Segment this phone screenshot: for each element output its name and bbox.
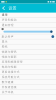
button[interactable]: Back	[2, 5, 6, 11]
button[interactable]: 开发者选项	[0, 85, 56, 90]
staticText: 显示	[2, 40, 8, 43]
button[interactable]: 声音和振动	[0, 18, 56, 23]
button[interactable]: 锁屏与密码	[0, 49, 56, 54]
staticText: 指纹与面部	[2, 55, 17, 58]
staticText: 应用和权限管理	[2, 60, 23, 63]
staticText: 设置	[8, 6, 16, 10]
button[interactable]: 指纹与面部	[0, 54, 56, 59]
button[interactable]: 应用和权限管理	[0, 59, 56, 64]
button[interactable]: 通用	[0, 13, 56, 18]
staticText: 锁屏与密码	[2, 50, 17, 53]
button[interactable]: 显示	[0, 39, 56, 44]
staticText: 开发者选项	[2, 85, 17, 89]
button[interactable]: 关于本机	[0, 90, 56, 95]
staticText: 电池与性能	[2, 65, 17, 69]
staticText: 关于本机	[2, 90, 14, 94]
staticText: 壁纸	[2, 45, 8, 48]
staticText: 通用	[2, 13, 8, 17]
button[interactable]: 数字健康	[0, 80, 56, 85]
staticText: 默认铃声	[2, 35, 14, 38]
staticText: 通知管理	[2, 23, 14, 27]
staticText: 更多连接方式	[2, 70, 20, 74]
staticText: 声音和振动	[2, 18, 17, 22]
button[interactable]: 壁纸	[0, 44, 56, 49]
staticText: 数字健康	[2, 80, 14, 84]
button[interactable]: 更多连接方式	[0, 70, 56, 75]
button[interactable]: 电池与性能	[0, 65, 56, 70]
button[interactable]: 通知管理	[0, 23, 56, 28]
staticText: 系统导航方式	[2, 75, 20, 79]
button[interactable]: 默认铃声	[0, 34, 56, 39]
button[interactable]: 系统导航方式	[0, 75, 56, 80]
